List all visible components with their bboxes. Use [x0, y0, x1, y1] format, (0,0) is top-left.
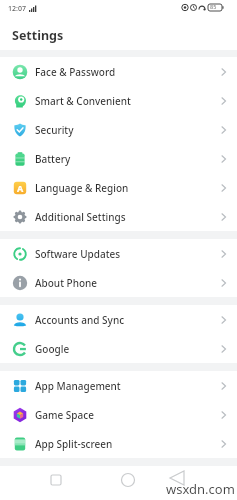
- staticText: Accounts and Sync: [35, 313, 125, 327]
- staticText: Game Space: [35, 408, 94, 422]
- staticText: About Phone: [35, 276, 98, 290]
- staticText: 85: [210, 3, 217, 10]
- staticText: Smart & Convenient: [35, 94, 131, 108]
- button[interactable]: Battery: [0, 144, 237, 173]
- staticText: 12:07: [8, 4, 26, 14]
- button[interactable]: [0, 466, 79, 500]
- staticText: Additional Settings: [35, 210, 126, 224]
- button[interactable]: Additional Settings: [0, 202, 237, 231]
- button[interactable]: Google: [0, 334, 237, 363]
- staticText: A: [17, 182, 24, 194]
- staticText: App Management: [35, 379, 121, 393]
- staticText: Security: [35, 123, 74, 137]
- button[interactable]: Software Updates: [0, 239, 237, 268]
- button[interactable]: Smart & Convenient: [0, 86, 237, 115]
- staticText: Face & Password: [35, 65, 116, 79]
- button[interactable]: About Phone: [0, 268, 237, 297]
- button[interactable]: Accounts and Sync: [0, 305, 237, 334]
- staticText: Google: [35, 342, 70, 356]
- staticText: Settings: [12, 27, 64, 44]
- staticText: Software Updates: [35, 247, 121, 261]
- button[interactable]: App Split-screen: [0, 429, 237, 458]
- button[interactable]: A: [0, 173, 237, 202]
- button[interactable]: Security: [0, 115, 237, 144]
- button[interactable]: Face & Password: [0, 57, 237, 86]
- staticText: App Split-screen: [35, 437, 113, 451]
- staticText: wsxdn.com: [166, 480, 235, 498]
- staticText: Battery: [35, 152, 71, 166]
- button[interactable]: Game Space: [0, 400, 237, 429]
- button[interactable]: [79, 466, 158, 500]
- staticText: Language & Region: [35, 181, 129, 195]
- button[interactable]: [158, 466, 237, 500]
- button[interactable]: App Management: [0, 371, 237, 400]
